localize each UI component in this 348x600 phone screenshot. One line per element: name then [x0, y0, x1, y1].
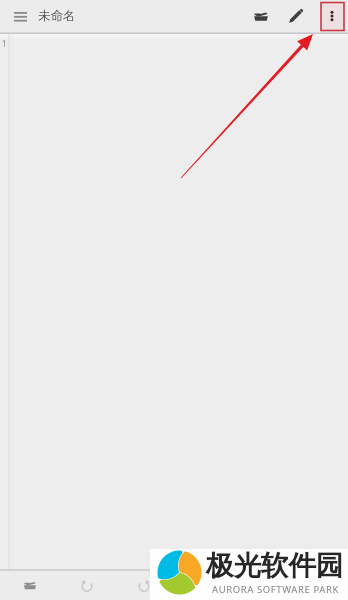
button[interactable]: More options — [317, 1, 347, 31]
staticText: 1 — [2, 38, 7, 49]
staticText: 未命名 — [38, 8, 76, 24]
button[interactable]: Share — [234, 570, 282, 600]
button[interactable]: Undo — [63, 570, 111, 600]
button[interactable]: Navigation menu — [3, 0, 38, 34]
button[interactable]: Settings — [291, 570, 339, 600]
staticText: AURORA SOFTWARE PARK — [212, 583, 339, 596]
button[interactable]: Redo — [120, 570, 168, 600]
staticText: 极光软件园 — [206, 549, 344, 584]
button[interactable]: Open file — [246, 1, 276, 31]
button[interactable]: Edit — [281, 1, 311, 31]
button[interactable]: Save — [177, 570, 225, 600]
button[interactable]: Open file — [6, 570, 54, 600]
